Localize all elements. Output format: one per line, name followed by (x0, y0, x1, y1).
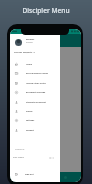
button[interactable]: Settings (10, 116, 60, 125)
button[interactable]: Sign Out (10, 170, 60, 179)
staticText: Broadcast Message (26, 91, 46, 94)
button[interactable]: Upload Study Notes (10, 79, 60, 88)
button[interactable]: Home (10, 60, 60, 69)
staticText: Support (26, 129, 34, 132)
staticText: Preferences (15, 148, 25, 150)
button[interactable]: Record/Upload Videos (10, 69, 60, 78)
staticText: Record/Upload Videos (26, 72, 48, 75)
staticText: Home (26, 63, 32, 66)
staticText: Dark Theme (13, 156, 24, 159)
button[interactable]: Broadcast Message (10, 88, 60, 97)
button[interactable]: Profile (10, 107, 60, 116)
staticText: Students Enrolment (26, 101, 46, 104)
button[interactable]: Dark theme toggle (49, 157, 54, 159)
staticText: Settings (26, 119, 35, 122)
staticText: Upload Study Notes (26, 82, 46, 85)
staticText: Sign Out (25, 173, 34, 176)
staticText: Courses 3 (14, 51, 25, 54)
button[interactable]: Support (10, 126, 60, 135)
staticText: Profile (26, 110, 33, 113)
staticText: Discipler Menu (22, 6, 70, 15)
staticText: Subjects 3 (24, 51, 35, 54)
staticText: Discipler (26, 41, 33, 43)
button[interactable]: Students Enrolment (10, 98, 60, 107)
staticText: discipler (26, 38, 35, 41)
